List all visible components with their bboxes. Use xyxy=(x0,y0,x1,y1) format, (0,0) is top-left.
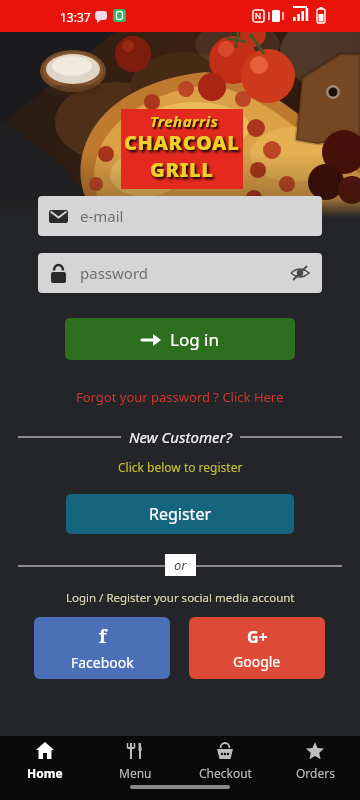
button[interactable]: Register xyxy=(66,494,294,534)
staticText: 13:37 xyxy=(60,9,91,25)
button[interactable]: e-mail xyxy=(38,196,322,236)
staticText: Login / Register your social media accou… xyxy=(66,590,295,606)
staticText: GRILL xyxy=(150,156,214,183)
staticText: CHARCOAL xyxy=(124,129,240,156)
staticText: Treharris xyxy=(150,111,219,131)
staticText: password xyxy=(80,263,148,283)
button[interactable]: Orders xyxy=(270,736,360,780)
staticText: New Customer? xyxy=(129,427,232,447)
staticText: f xyxy=(99,624,107,649)
staticText: Google xyxy=(233,652,281,671)
staticText: Register xyxy=(149,503,212,525)
staticText: e-mail xyxy=(80,206,124,226)
button[interactable]: G+ xyxy=(189,617,325,679)
staticText: Orders xyxy=(296,765,335,780)
staticText: Forgot your password ? Click Here xyxy=(76,388,284,406)
staticText: G+ xyxy=(247,626,268,648)
button[interactable]: Home xyxy=(0,736,90,780)
button[interactable]: Log in xyxy=(65,318,295,360)
staticText: Click below to register xyxy=(118,459,243,475)
staticText: Home xyxy=(27,765,63,780)
button[interactable]: Checkout xyxy=(180,736,270,780)
button[interactable]: Forgot your password ? Click Here xyxy=(0,388,360,406)
staticText: Log in xyxy=(170,328,219,351)
staticText: Facebook xyxy=(71,653,134,672)
staticText: Menu xyxy=(119,765,152,780)
button[interactable]: password xyxy=(38,253,322,293)
staticText: or xyxy=(174,556,187,574)
staticText: Checkout xyxy=(199,765,252,780)
button[interactable]: Menu xyxy=(90,736,180,780)
button[interactable]: f xyxy=(34,617,170,679)
